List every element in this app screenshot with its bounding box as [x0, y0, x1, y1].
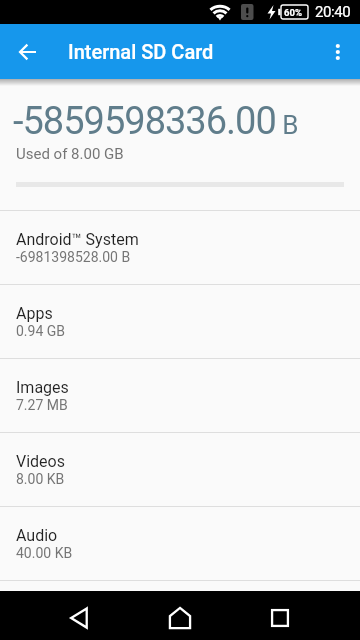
button[interactable] — [230, 591, 330, 640]
staticText: -6981398528.00 B — [16, 249, 131, 265]
staticText: 7.27 MB — [16, 397, 68, 413]
staticText: 40.00 KB — [16, 545, 73, 561]
button[interactable]: Audio — [0, 507, 360, 581]
staticText: -5859598336.00 B — [13, 99, 299, 144]
staticText: Android™ System — [16, 230, 139, 249]
staticText: Videos — [16, 452, 65, 471]
button[interactable]: Images — [0, 359, 360, 433]
button[interactable] — [0, 28, 48, 76]
staticText: Internal SD Card — [68, 40, 214, 63]
staticText: Used of 8.00 GB — [16, 145, 124, 163]
button[interactable]: Videos — [0, 433, 360, 507]
button[interactable] — [312, 28, 360, 76]
staticText: 0.94 GB — [16, 323, 66, 339]
button[interactable]: Android™ System — [0, 211, 360, 285]
button[interactable] — [30, 591, 130, 640]
button[interactable]: Apps — [0, 285, 360, 359]
staticText: 60% — [284, 7, 302, 18]
staticText: Audio — [16, 526, 58, 545]
staticText: 8.00 KB — [16, 471, 65, 487]
staticText: Apps — [16, 304, 53, 323]
staticText: Images — [16, 378, 69, 397]
staticText: 20:40 — [315, 3, 351, 21]
button[interactable] — [130, 591, 230, 640]
